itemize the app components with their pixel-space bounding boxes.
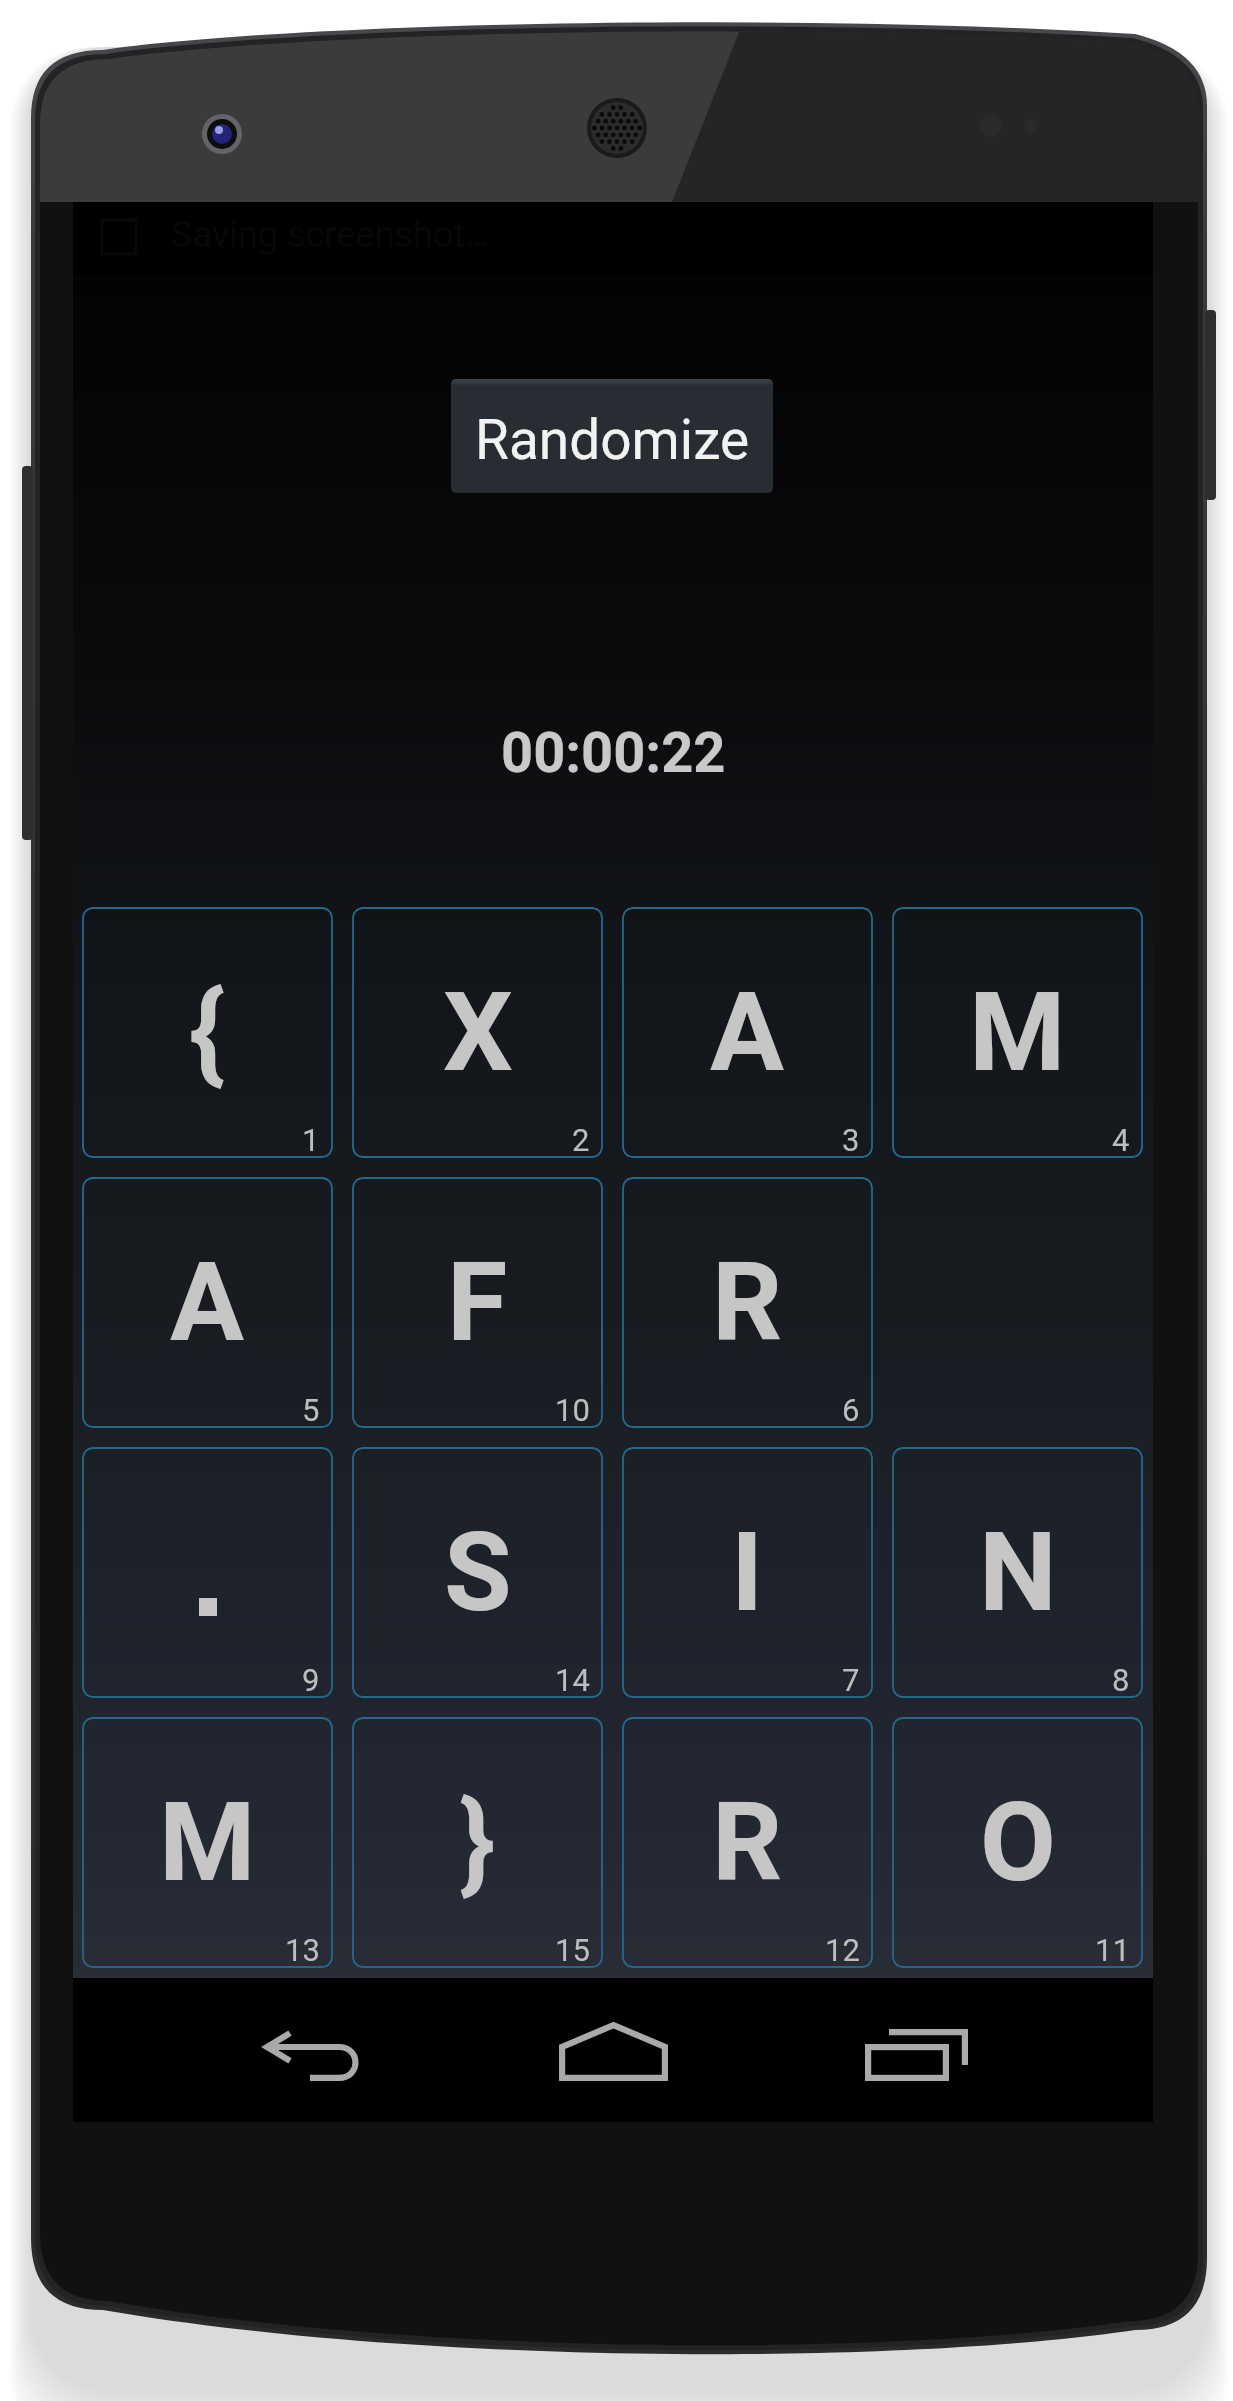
- staticText: X: [443, 968, 513, 1097]
- staticText: Randomize: [475, 408, 750, 472]
- button[interactable]: A: [622, 907, 873, 1158]
- staticText: M: [159, 1778, 256, 1907]
- staticText: {: [189, 968, 226, 1097]
- staticText: 15: [555, 1932, 590, 1968]
- button[interactable]: I: [622, 1447, 873, 1698]
- staticText: O: [980, 1778, 1056, 1907]
- staticText: 14: [555, 1662, 590, 1698]
- staticText: S: [444, 1508, 512, 1637]
- staticText: N: [979, 1508, 1057, 1637]
- button[interactable]: 9: [82, 1447, 333, 1698]
- button[interactable]: F: [352, 1177, 603, 1428]
- staticText: 8: [1112, 1662, 1130, 1698]
- staticText: 2: [572, 1122, 590, 1158]
- staticText: 9: [302, 1662, 320, 1698]
- button[interactable]: Recent apps: [821, 1978, 1011, 2122]
- button[interactable]: M: [82, 1717, 333, 1968]
- staticText: 10: [555, 1392, 590, 1428]
- button[interactable]: S: [352, 1447, 603, 1698]
- button[interactable]: A: [82, 1177, 333, 1428]
- staticText: 3: [842, 1122, 860, 1158]
- staticText: A: [710, 968, 785, 1097]
- button[interactable]: R: [622, 1717, 873, 1968]
- staticText: M: [969, 968, 1066, 1097]
- staticText: 13: [285, 1932, 320, 1968]
- staticText: 6: [842, 1392, 860, 1428]
- button[interactable]: X: [352, 907, 603, 1158]
- staticText: 00:00:22: [501, 720, 726, 786]
- button[interactable]: Back: [218, 1978, 408, 2122]
- button[interactable]: R: [622, 1177, 873, 1428]
- staticText: R: [712, 1778, 783, 1907]
- button[interactable]: M: [892, 907, 1143, 1158]
- button[interactable]: {: [82, 907, 333, 1158]
- button[interactable]: Randomize: [451, 379, 773, 493]
- staticText: 5: [302, 1392, 320, 1428]
- button[interactable]: }: [352, 1717, 603, 1968]
- button[interactable]: N: [892, 1447, 1143, 1698]
- button[interactable]: Home: [518, 1978, 708, 2122]
- staticText: 4: [1112, 1122, 1130, 1158]
- staticText: 1: [302, 1122, 320, 1158]
- staticText: F: [447, 1238, 508, 1367]
- staticText: I: [731, 1508, 764, 1637]
- staticText: 7: [842, 1662, 860, 1698]
- button[interactable]: O: [892, 1717, 1143, 1968]
- staticText: }: [459, 1778, 496, 1907]
- staticText: 11: [1095, 1932, 1130, 1968]
- staticText: A: [170, 1238, 245, 1367]
- staticText: 12: [825, 1932, 860, 1968]
- staticText: R: [712, 1238, 783, 1367]
